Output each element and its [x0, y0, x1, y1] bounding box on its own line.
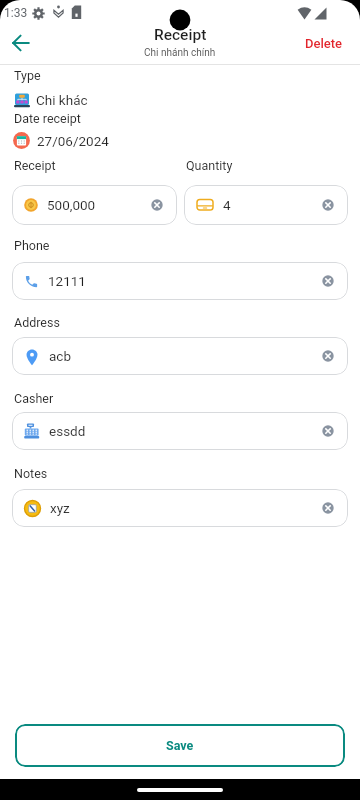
- button[interactable]: acb: [12, 337, 348, 375]
- staticText: Save: [166, 738, 194, 753]
- button[interactable]: essdd: [12, 412, 348, 450]
- staticText: 12111: [48, 273, 86, 289]
- staticText: 4: [223, 197, 231, 213]
- staticText: 1:33: [4, 6, 28, 20]
- staticText: 500,000: [47, 197, 96, 213]
- staticText: Chi nhánh chính: [144, 47, 216, 59]
- staticText: Quantity: [186, 158, 233, 173]
- button[interactable]: [12, 34, 30, 52]
- staticText: Receipt: [14, 158, 56, 173]
- staticText: Address: [14, 315, 60, 330]
- staticText: Receipt: [154, 26, 207, 44]
- staticText: acb: [49, 348, 71, 364]
- staticText: essdd: [49, 423, 86, 439]
- button[interactable]: 12111: [12, 262, 348, 300]
- staticText: xyz: [50, 500, 70, 516]
- button[interactable]: xyz: [12, 489, 348, 527]
- button[interactable]: Delete: [295, 33, 343, 53]
- button[interactable]: 27/06/2024: [12, 132, 142, 150]
- staticText: Casher: [14, 391, 54, 406]
- button[interactable]: Chi khác: [14, 92, 134, 109]
- staticText: Notes: [14, 466, 48, 481]
- button[interactable]: 4: [184, 185, 348, 225]
- staticText: Type: [14, 68, 41, 83]
- staticText: Phone: [14, 238, 50, 253]
- staticText: Delete: [305, 36, 343, 51]
- staticText: Date receipt: [14, 111, 81, 126]
- staticText: 27/06/2024: [37, 133, 109, 149]
- button[interactable]: 500,000: [12, 185, 177, 225]
- button[interactable]: Save: [15, 724, 345, 767]
- staticText: Chi khác: [36, 92, 88, 108]
